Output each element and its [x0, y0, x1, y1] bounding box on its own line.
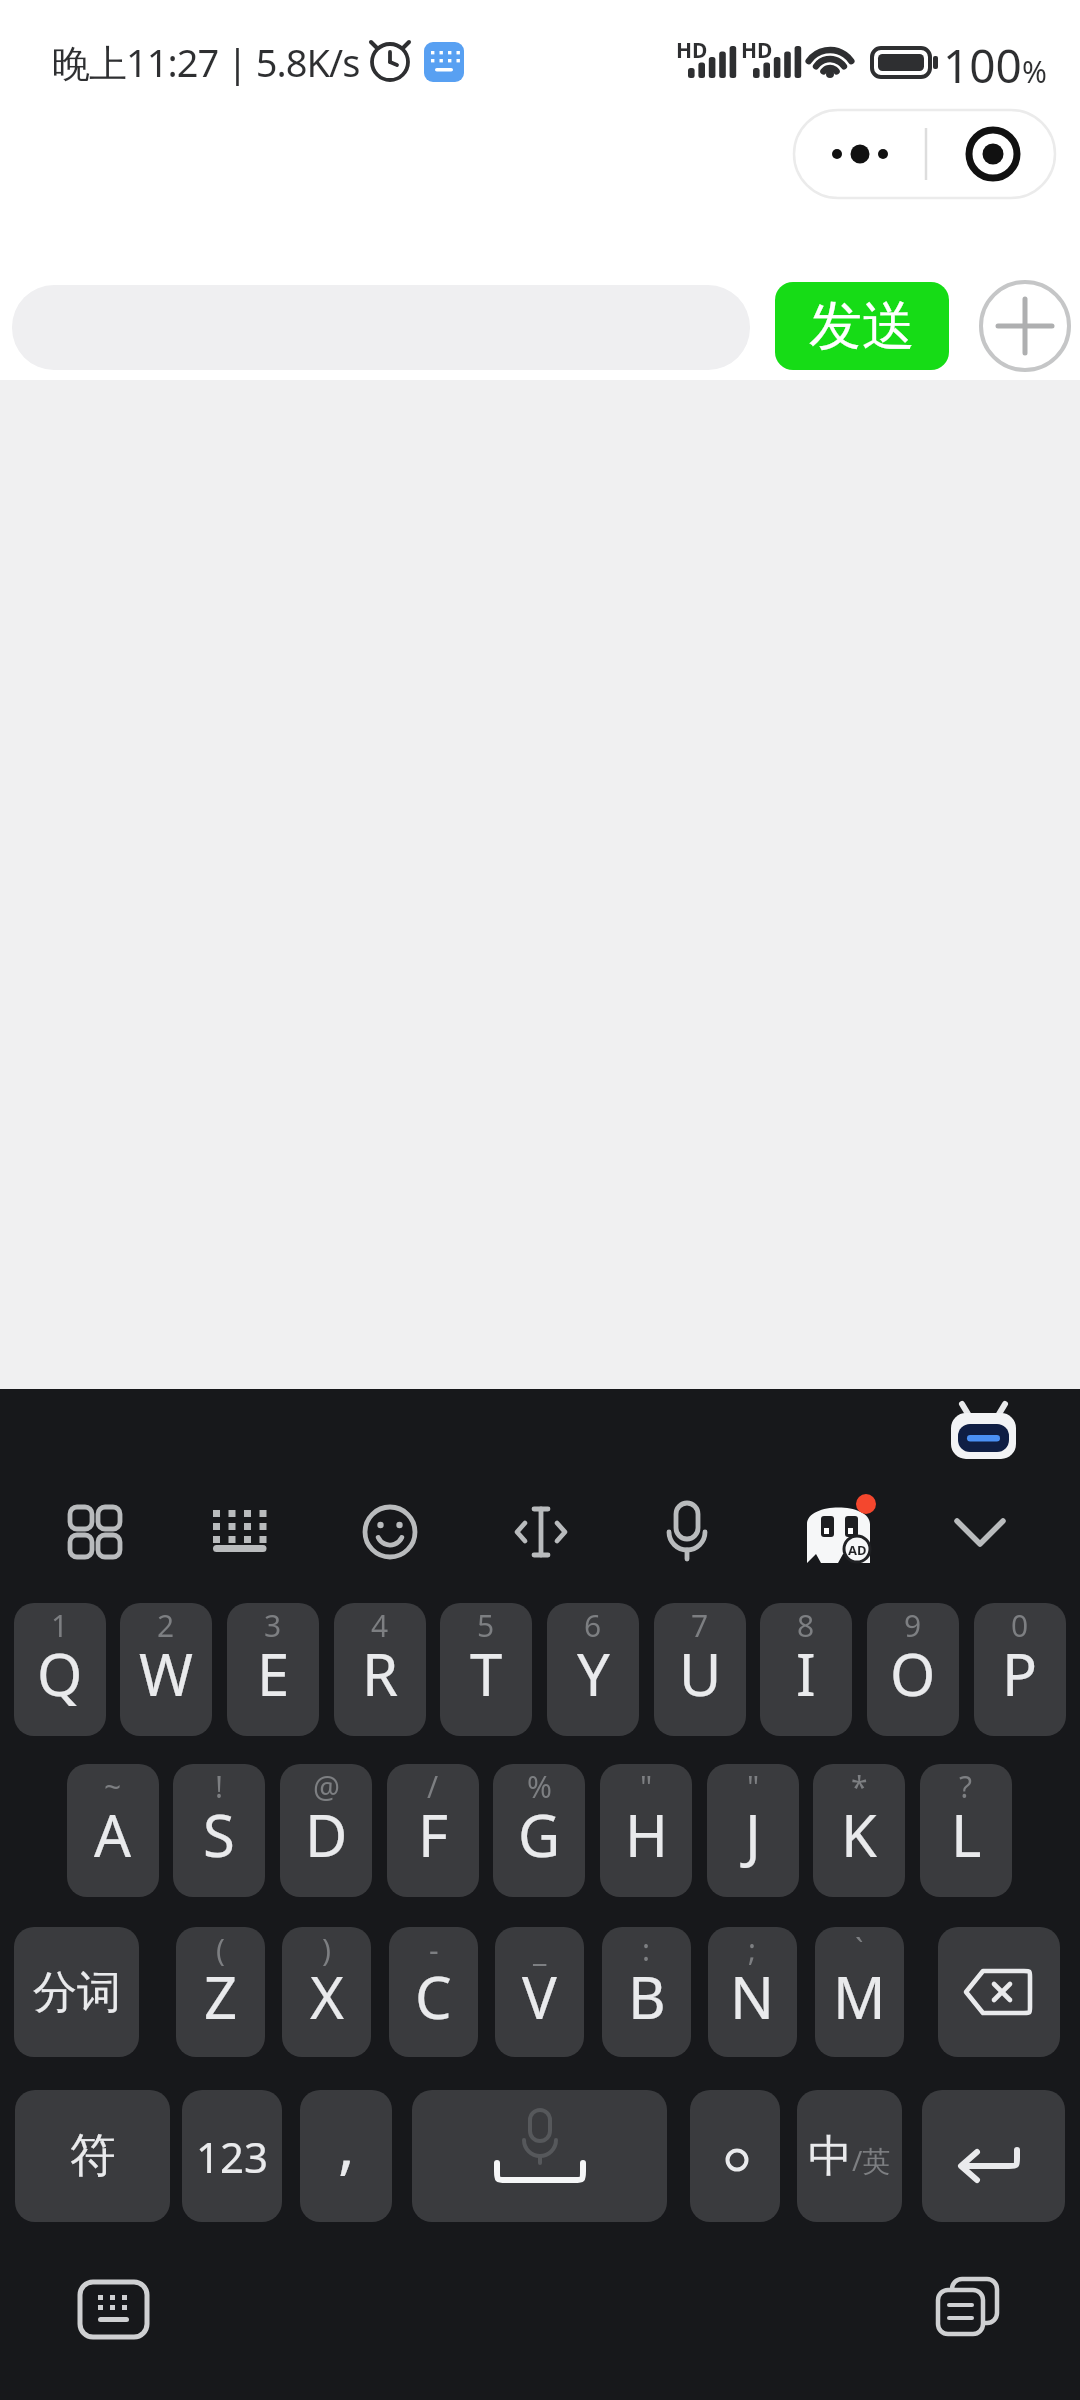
button[interactable]: 8 — [760, 1603, 852, 1736]
staticText: 符 — [70, 2127, 116, 2185]
staticText: ; — [748, 1929, 757, 1970]
button[interactable]: ( — [176, 1927, 265, 2057]
staticText: 5 — [477, 1605, 495, 1646]
staticText: V — [522, 1957, 557, 2036]
staticText: HD — [741, 36, 773, 62]
staticText: Z — [204, 1957, 238, 2036]
button[interactable]: , — [300, 2090, 392, 2222]
button[interactable]: ? — [920, 1764, 1012, 1897]
button[interactable]: 发送 — [775, 282, 949, 370]
button[interactable]: 5 — [440, 1603, 532, 1736]
button[interactable]: 1 — [14, 1603, 106, 1736]
staticText: , — [338, 2102, 355, 2186]
staticText: : — [642, 1929, 651, 1970]
staticText: 晚上11:27 | 5.8K/s — [52, 36, 360, 88]
button[interactable]: ) — [282, 1927, 371, 2057]
staticText: ( — [216, 1929, 225, 1970]
staticText: 发送 — [809, 293, 915, 360]
button[interactable] — [412, 2090, 667, 2222]
staticText: A — [94, 1795, 132, 1874]
staticText: Q — [37, 1634, 83, 1713]
staticText: - — [429, 1929, 439, 1970]
staticText: G — [518, 1795, 561, 1874]
staticText: 分词 — [33, 1965, 121, 2020]
button[interactable] — [922, 2090, 1065, 2222]
staticText: @ — [313, 1766, 340, 1807]
staticText: 6 — [584, 1605, 602, 1646]
staticText: U — [679, 1634, 722, 1713]
button[interactable] — [793, 1487, 883, 1577]
staticText: R — [362, 1634, 399, 1713]
staticText: 4 — [371, 1605, 389, 1646]
button[interactable]: * — [813, 1764, 905, 1897]
staticText: AD — [848, 1541, 867, 1559]
staticText: X — [310, 1957, 344, 2036]
staticText: W — [139, 1634, 193, 1713]
button[interactable]: ` — [815, 1927, 904, 2057]
button[interactable]: 分词 — [14, 1927, 139, 2057]
button[interactable]: " — [707, 1764, 799, 1897]
staticText: ? — [959, 1766, 973, 1807]
button[interactable]: 6 — [547, 1603, 639, 1736]
button[interactable] — [345, 1487, 435, 1577]
button[interactable]: @ — [280, 1764, 372, 1897]
staticText: 0 — [1011, 1605, 1029, 1646]
staticText: F — [418, 1795, 449, 1874]
staticText: * — [851, 1766, 868, 1807]
button[interactable]: 2 — [120, 1603, 212, 1736]
button[interactable] — [50, 1487, 140, 1577]
button[interactable] — [935, 1487, 1025, 1577]
button[interactable]: - — [389, 1927, 478, 2057]
button[interactable]: 4 — [334, 1603, 426, 1736]
button[interactable] — [690, 2090, 780, 2222]
staticText: 123 — [196, 2128, 269, 2185]
button[interactable] — [642, 1487, 732, 1577]
button[interactable]: : — [602, 1927, 691, 2057]
staticText: 100% — [943, 34, 1047, 90]
button[interactable]: 7 — [654, 1603, 746, 1736]
button[interactable]: ! — [173, 1764, 265, 1897]
staticText: I — [796, 1634, 816, 1713]
staticText: " — [640, 1766, 653, 1807]
button[interactable]: 9 — [867, 1603, 959, 1736]
staticText: HD — [676, 36, 708, 62]
button[interactable]: ~ — [67, 1764, 159, 1897]
button[interactable]: 3 — [227, 1603, 319, 1736]
staticText: E — [257, 1634, 290, 1713]
staticText: 3 — [264, 1605, 282, 1646]
button[interactable]: ; — [708, 1927, 797, 2057]
button[interactable] — [70, 2270, 160, 2350]
staticText: " — [747, 1766, 760, 1807]
button[interactable]: 0 — [974, 1603, 1066, 1736]
staticText: ` — [855, 1929, 864, 1970]
staticText: ~ — [104, 1766, 122, 1807]
staticText: T — [470, 1634, 503, 1713]
staticText: % — [527, 1766, 552, 1807]
button[interactable]: " — [600, 1764, 692, 1897]
button[interactable]: / — [387, 1764, 479, 1897]
staticText: ) — [322, 1929, 331, 1970]
button[interactable]: 符 — [15, 2090, 170, 2222]
button[interactable] — [979, 280, 1071, 372]
staticText: Y — [577, 1634, 610, 1713]
staticText: K — [841, 1795, 877, 1874]
button[interactable] — [196, 1487, 286, 1577]
button[interactable]: 中/英 — [797, 2090, 902, 2222]
button[interactable]: _ — [495, 1927, 584, 2057]
staticText: S — [203, 1795, 235, 1874]
button[interactable] — [938, 1927, 1060, 2057]
button[interactable] — [496, 1487, 586, 1577]
button[interactable]: 123 — [182, 2090, 282, 2222]
staticText: M — [833, 1957, 886, 2036]
button[interactable] — [794, 110, 1055, 198]
staticText: 中/英 — [808, 2129, 891, 2184]
staticText: 8 — [797, 1605, 815, 1646]
button[interactable] — [925, 2270, 1015, 2350]
staticText: 9 — [904, 1605, 922, 1646]
staticText: N — [730, 1957, 775, 2036]
staticText: O — [890, 1634, 936, 1713]
button[interactable]: % — [493, 1764, 585, 1897]
staticText: 2 — [157, 1605, 175, 1646]
staticText: ! — [215, 1766, 224, 1807]
